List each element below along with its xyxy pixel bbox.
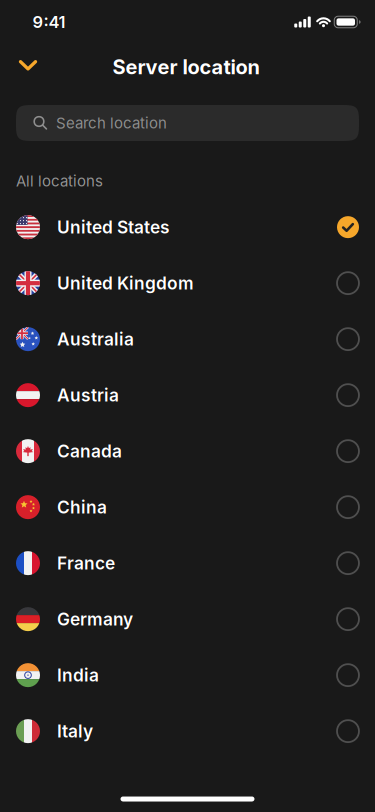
staticText: Australia: [57, 329, 134, 350]
staticText: United States: [57, 217, 170, 238]
staticText: China: [57, 497, 107, 518]
button[interactable]: Germany: [0, 591, 375, 647]
button[interactable]: Australia: [0, 311, 375, 367]
button[interactable]: France: [0, 535, 375, 591]
button[interactable]: Close: [15, 54, 41, 76]
button[interactable]: China: [0, 479, 375, 535]
button[interactable]: Italy: [0, 703, 375, 759]
staticText: Server location: [112, 55, 259, 79]
button[interactable]: Austria: [0, 367, 375, 423]
staticText: 9:41: [32, 12, 65, 32]
staticText: Italy: [57, 721, 93, 742]
button[interactable]: United States: [0, 199, 375, 255]
button[interactable]: Search location: [16, 105, 359, 141]
staticText: Austria: [57, 385, 119, 406]
staticText: France: [57, 553, 115, 574]
staticText: All locations: [16, 172, 103, 190]
staticText: United Kingdom: [57, 273, 194, 294]
button[interactable]: India: [0, 647, 375, 703]
button[interactable]: Canada: [0, 423, 375, 479]
staticText: India: [57, 665, 99, 686]
staticText: Germany: [57, 609, 133, 630]
staticText: Canada: [57, 441, 122, 462]
button[interactable]: United Kingdom: [0, 255, 375, 311]
staticText: Search location: [56, 114, 167, 132]
